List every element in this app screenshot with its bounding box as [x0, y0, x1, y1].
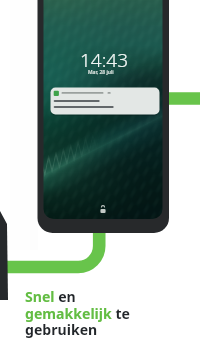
staticText: Snel en gemakkelijk te gebruiken	[25, 287, 130, 339]
staticText: 14:43	[80, 47, 129, 73]
staticText: Mar, 28 juli	[88, 69, 114, 76]
